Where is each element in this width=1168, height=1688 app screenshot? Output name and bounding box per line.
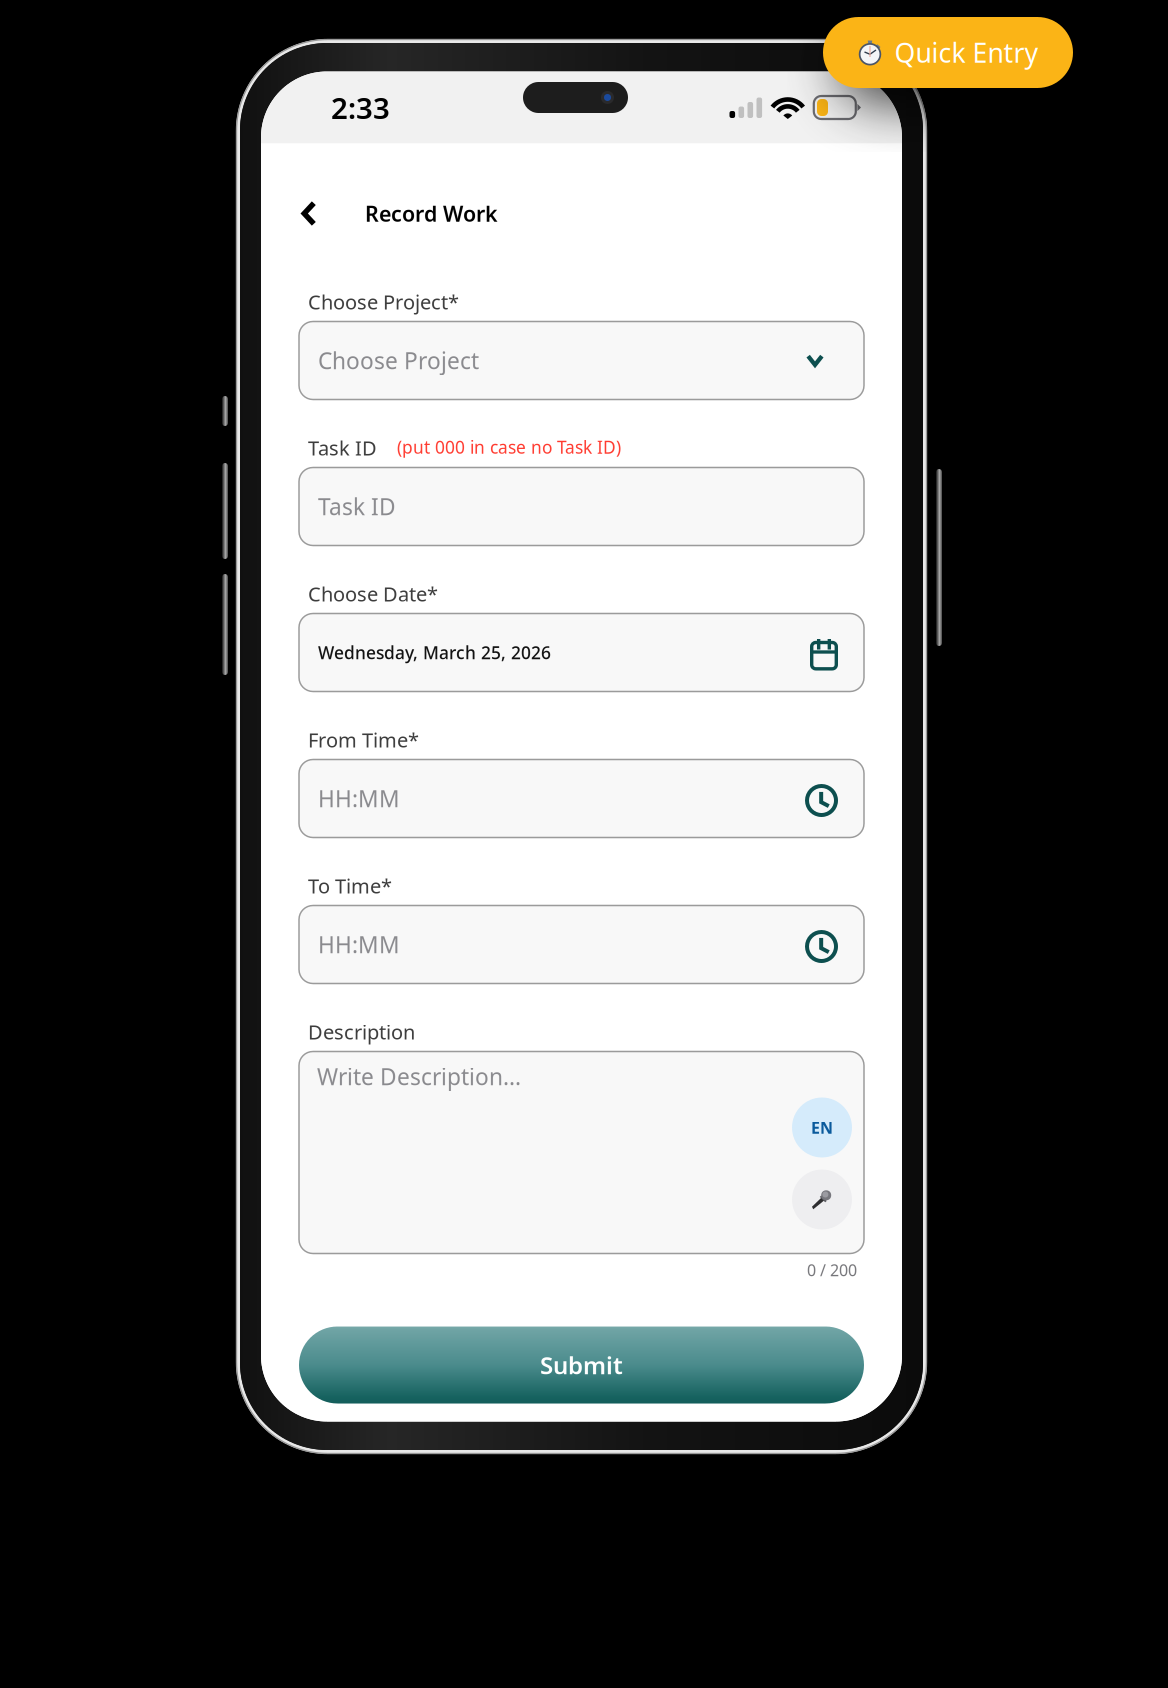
- button[interactable]: HH:MM: [299, 905, 864, 983]
- staticText: Task ID: [318, 491, 396, 521]
- staticText: Wednesday, March 25, 2026: [318, 641, 551, 664]
- staticText: EN: [811, 1117, 833, 1138]
- button[interactable]: HH:MM: [299, 759, 864, 837]
- button[interactable]: Task ID: [299, 467, 864, 545]
- staticText: Choose Project: [318, 345, 479, 375]
- staticText: Choose Project*: [308, 288, 459, 315]
- staticText: Task ID: [308, 434, 377, 461]
- button[interactable]: Quick Entry: [823, 17, 1073, 88]
- staticText: HH:MM: [318, 783, 400, 813]
- button[interactable]: Wednesday, March 25, 2026: [299, 613, 864, 691]
- button[interactable]: Submit: [299, 1326, 864, 1403]
- staticText: Description: [308, 1018, 415, 1045]
- button[interactable]: Record voice note: [792, 1169, 852, 1229]
- staticText: Submit: [540, 1349, 623, 1381]
- staticText: HH:MM: [318, 929, 400, 959]
- staticText: Quick Entry: [894, 35, 1038, 70]
- button[interactable]: EN: [792, 1097, 852, 1157]
- staticText: To Time*: [308, 872, 392, 899]
- button[interactable]: Back: [282, 186, 336, 240]
- staticText: Write Description...: [317, 1061, 521, 1092]
- staticText: (put 000 in case no Task ID): [397, 435, 621, 458]
- staticText: From Time*: [308, 726, 419, 753]
- staticText: Choose Date*: [308, 580, 438, 607]
- staticText: Record Work: [365, 199, 498, 228]
- staticText: 2:33: [331, 88, 390, 127]
- button[interactable]: Choose Project: [299, 321, 864, 399]
- staticText: 0 / 200: [807, 1259, 857, 1281]
